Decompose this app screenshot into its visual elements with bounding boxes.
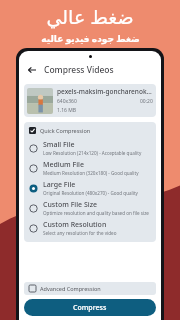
staticText: ضغط جوده فيديو عاليه: [41, 32, 140, 44]
button[interactable]: Medium File: [24, 158, 156, 178]
button[interactable]: Large File: [24, 178, 156, 198]
staticText: Custom Resolution: [43, 220, 107, 230]
staticText: pexels-maksim-goncharenok…: [57, 87, 152, 96]
staticText: Medium File: [43, 160, 85, 170]
button[interactable]: pexels-maksim-goncharenok…: [24, 84, 156, 117]
staticText: 00:20: [140, 98, 153, 105]
staticText: Large File: [43, 180, 76, 190]
button[interactable]: Custom Resolution: [24, 218, 156, 238]
button[interactable]: Quick Compression: [24, 126, 156, 135]
staticText: Small File: [43, 140, 75, 150]
staticText: Select any resolution for the video: [43, 230, 117, 236]
staticText: ضغط عالي: [46, 4, 134, 30]
button[interactable]: Advanced Compression: [24, 282, 156, 295]
staticText: Advanced Compression: [40, 285, 101, 292]
staticText: Custom File Size: [43, 200, 98, 210]
staticText: 1.16 MB: [57, 107, 77, 114]
staticText: Compress Videos: [44, 64, 114, 76]
staticText: Low Resolution (214x120) - Acceptable qu…: [43, 150, 142, 156]
button[interactable]: Back: [24, 62, 40, 78]
button[interactable]: Compress: [24, 299, 156, 316]
staticText: Medium Resolution (320x180) - Good quali…: [43, 170, 139, 176]
button[interactable]: Small File: [24, 138, 156, 158]
staticText: 640x360: [57, 98, 77, 105]
staticText: Original Resolution (480x270) - Good qua…: [43, 190, 138, 196]
button[interactable]: Custom File Size: [24, 198, 156, 218]
staticText: Compress: [73, 303, 107, 313]
staticText: Optimize resolution and quality based on…: [43, 210, 149, 216]
staticText: Quick Compression: [40, 127, 91, 134]
